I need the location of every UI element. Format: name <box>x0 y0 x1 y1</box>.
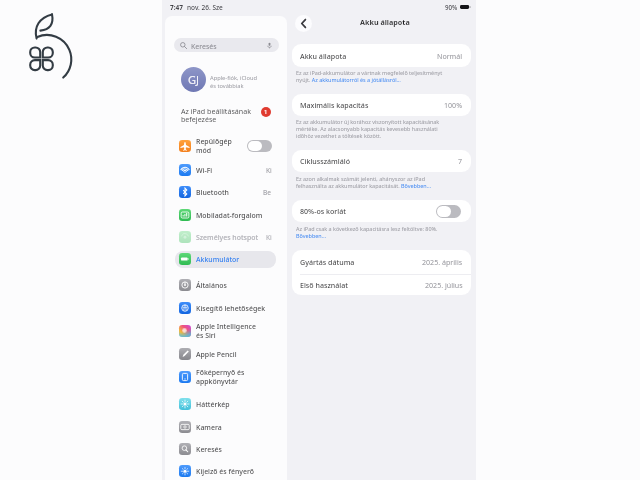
staticText: 7 <box>458 156 463 166</box>
staticText: Ciklusszámláló <box>300 156 351 166</box>
staticText: 100% <box>444 100 463 110</box>
button[interactable]: Toggle <box>436 205 461 218</box>
staticText: 80%-os korlát <box>300 206 347 216</box>
staticText: Apple Pencil <box>196 350 237 359</box>
button[interactable]: Wi-Fi <box>175 162 276 179</box>
button[interactable]: Kamera <box>175 419 276 436</box>
staticText: 2025. április <box>422 257 463 267</box>
staticText: Gyártás dátuma <box>300 257 355 267</box>
staticText: nyújt. Az akkumulátorról és a jótállásró… <box>296 76 401 83</box>
staticText: Bluetooth <box>196 188 229 197</box>
staticText: 1 <box>264 108 268 116</box>
button[interactable]: Keresés <box>175 441 276 458</box>
staticText: Mobiladat-forgalom <box>196 211 263 220</box>
staticText: Ez az iPad-akkumulátor a vártnak megfele… <box>296 69 443 76</box>
button[interactable]: Az iPad beállításának befejezése <box>177 102 285 126</box>
staticText: Kamera <box>196 423 222 432</box>
staticText: Az iPad csak a következő kapacitásra les… <box>296 225 438 232</box>
staticText: Normál <box>437 51 463 61</box>
button[interactable]: Back <box>295 15 312 32</box>
staticText: Kijelző és fényerő <box>196 467 254 476</box>
staticText: Kisegítő lehetőségek <box>196 304 266 313</box>
staticText: Akku állapota <box>360 17 410 27</box>
staticText: Háttérkép <box>196 400 230 409</box>
button[interactable]: Akku állapota <box>292 44 471 67</box>
staticText: mértéke. Az alacsonyabb kapacitás kevese… <box>296 125 438 132</box>
button[interactable]: Bluetooth <box>175 184 276 201</box>
staticText: időhöz vezethet a töltések között. <box>296 132 382 139</box>
staticText: Ki <box>266 166 272 175</box>
staticText: 7:47 <box>170 3 183 12</box>
button[interactable]: Ciklusszámláló <box>292 150 471 172</box>
staticText: Keresés <box>191 42 217 52</box>
staticText: Akkumulátor <box>196 255 240 264</box>
staticText: Főképernyő és appkönyvtár <box>196 368 245 386</box>
staticText: Apple-fiók, iCloud <box>210 74 258 82</box>
staticText: Maximális kapacitás <box>300 100 369 110</box>
button[interactable]: Mobiladat-forgalom <box>175 207 276 224</box>
button[interactable]: Repülőgép mód <box>175 135 276 157</box>
staticText: Az iPad beállításának befejezése <box>181 106 251 124</box>
button[interactable]: Apple Intelligence és Siri <box>175 320 276 342</box>
button[interactable]: Maximális kapacitás <box>292 94 471 116</box>
button[interactable]: Apple Pencil <box>175 346 276 363</box>
staticText: GJ <box>188 72 200 87</box>
staticText: Ez azon alkalmak számát jelenti, ahánysz… <box>296 175 425 182</box>
button[interactable]: Főképernyő és appkönyvtár <box>175 366 276 388</box>
button[interactable]: 80%-os korlát <box>292 200 471 222</box>
staticText: Keresés <box>196 445 222 454</box>
button[interactable]: Személyes hotspot <box>175 229 276 246</box>
staticText: Személyes hotspot <box>196 233 259 242</box>
button[interactable]: Toggle <box>247 140 272 152</box>
staticText: Bővebben… <box>296 232 326 239</box>
staticText: Be <box>263 188 272 197</box>
staticText: Ez az akkumulátor új korához viszonyítot… <box>296 118 440 125</box>
staticText: Wi-Fi <box>196 166 213 175</box>
button[interactable]: GJ <box>177 64 282 95</box>
button[interactable]: Keresés <box>174 38 279 52</box>
staticText: felhasználta az akkumulátor kapacitását.… <box>296 182 432 189</box>
button[interactable]: Kisegítő lehetőségek <box>175 300 276 317</box>
staticText: Akku állapota <box>300 51 347 61</box>
button[interactable]: Általános <box>175 277 276 294</box>
button[interactable]: Háttérkép <box>175 396 276 413</box>
button[interactable]: Gyártás dátuma <box>292 250 471 274</box>
staticText: Repülőgép mód <box>196 137 232 155</box>
staticText: nov. 26. Sze <box>187 3 223 12</box>
staticText: Első használat <box>300 280 349 290</box>
staticText: Apple Intelligence és Siri <box>196 322 256 340</box>
button[interactable]: Kijelző és fényerő <box>175 463 276 480</box>
staticText: és továbbiak <box>210 82 244 90</box>
staticText: Ki <box>266 233 272 242</box>
button[interactable]: Első használat <box>292 275 471 295</box>
button[interactable]: Akkumulátor <box>175 251 276 268</box>
staticText: Általános <box>196 281 227 290</box>
staticText: 2025. július <box>425 280 463 290</box>
staticText: 90% <box>445 3 458 11</box>
